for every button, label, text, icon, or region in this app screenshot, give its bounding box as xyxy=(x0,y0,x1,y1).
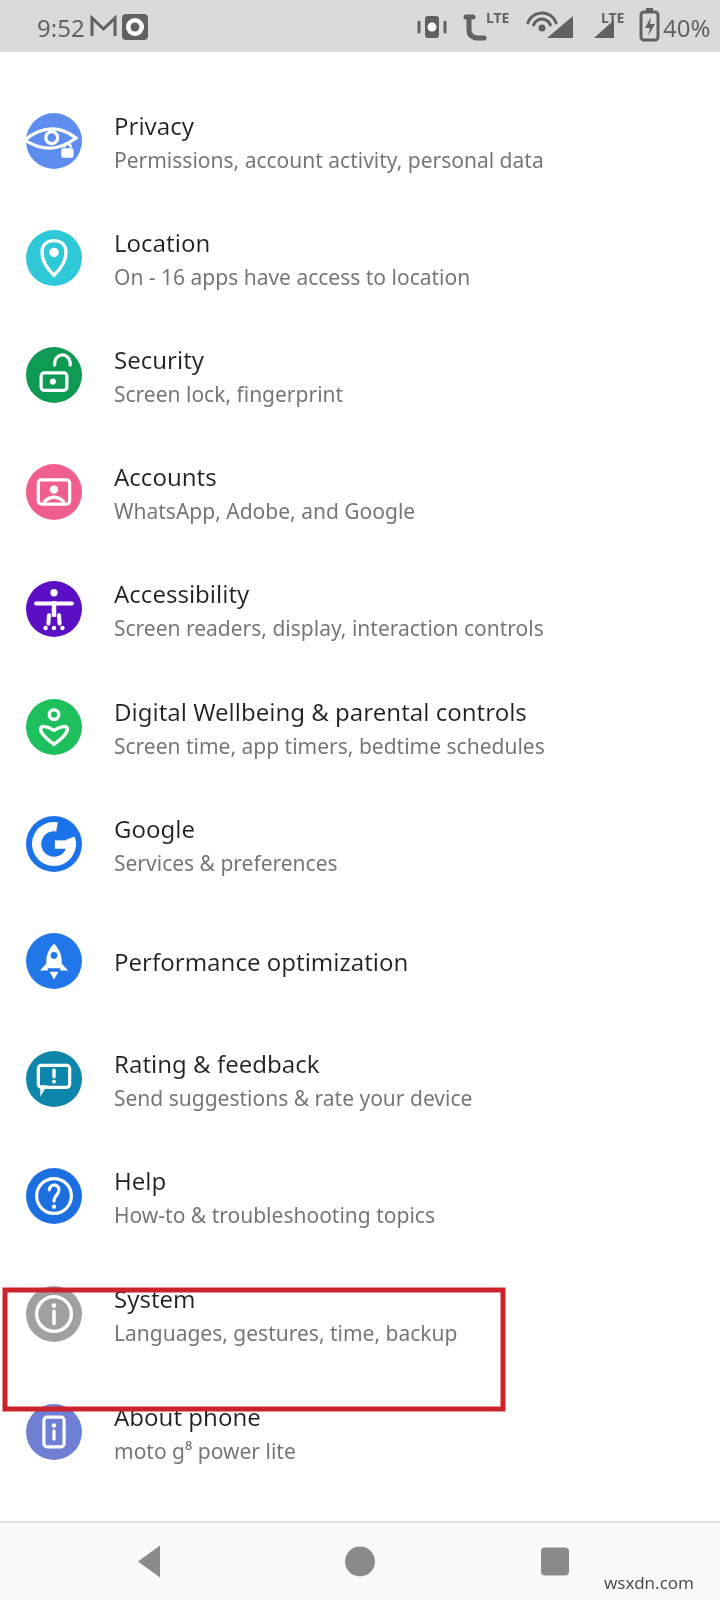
staticText: moto g⁸ power lite xyxy=(114,1437,296,1466)
staticText: WhatsApp, Adobe, and Google xyxy=(114,497,416,526)
staticText: 40% xyxy=(663,11,711,44)
button[interactable]: Home xyxy=(320,1523,400,1600)
staticText: wsxdn.com xyxy=(604,1571,695,1594)
staticText: Permissions, account activity, personal … xyxy=(114,146,544,175)
staticText: Rating & feedback xyxy=(114,1047,320,1080)
staticText: Accounts xyxy=(114,460,217,493)
staticText: Location xyxy=(114,226,211,259)
staticText: How-to & troubleshooting topics xyxy=(114,1201,435,1230)
staticText: Digital Wellbeing & parental controls xyxy=(114,695,527,728)
staticText: Screen readers, display, interaction con… xyxy=(114,614,544,643)
staticText: Security xyxy=(114,343,205,376)
button[interactable]: Back xyxy=(110,1523,190,1600)
button[interactable]: Digital Wellbeing & parental controls xyxy=(0,669,720,785)
staticText: On - 16 apps have access to location xyxy=(114,263,471,292)
button[interactable]: System xyxy=(0,1256,720,1372)
button[interactable]: Security xyxy=(0,317,720,433)
button[interactable]: Accessibility xyxy=(0,551,720,667)
button[interactable]: Privacy xyxy=(0,83,720,199)
button[interactable]: Accounts xyxy=(0,434,720,550)
staticText: Screen time, app timers, bedtime schedul… xyxy=(114,732,545,761)
staticText: Accessibility xyxy=(114,577,250,610)
button[interactable]: Performance optimization xyxy=(0,903,720,1019)
staticText: Performance optimization xyxy=(114,945,409,978)
staticText: Services & preferences xyxy=(114,849,338,878)
button[interactable]: About phone xyxy=(0,1374,720,1490)
button[interactable]: Recent apps xyxy=(515,1523,595,1600)
staticText: LTE xyxy=(601,8,625,27)
staticText: Send suggestions & rate your device xyxy=(114,1084,473,1113)
button[interactable]: Google xyxy=(0,786,720,902)
staticText: Screen lock, fingerprint xyxy=(114,380,344,409)
staticText: Help xyxy=(114,1164,167,1197)
button[interactable]: Rating & feedback xyxy=(0,1021,720,1137)
staticText: LTE xyxy=(486,8,510,27)
staticText: 9:52 xyxy=(37,11,85,44)
staticText: Languages, gestures, time, backup xyxy=(114,1319,458,1348)
staticText: Privacy xyxy=(114,109,195,142)
button[interactable]: Help xyxy=(0,1138,720,1254)
staticText: System xyxy=(114,1282,196,1315)
staticText: Google xyxy=(114,812,195,845)
button[interactable]: Location xyxy=(0,200,720,316)
staticText: About phone xyxy=(114,1400,261,1433)
